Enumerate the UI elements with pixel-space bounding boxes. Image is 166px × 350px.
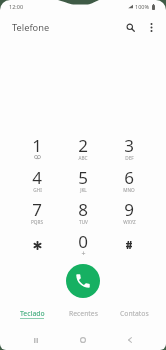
button[interactable] (106, 229, 152, 261)
button[interactable]: Call (66, 264, 100, 298)
staticText: GHI (33, 187, 42, 193)
staticText: Telefone (12, 21, 50, 34)
staticText: 100% (135, 3, 150, 10)
staticText: 6 (124, 166, 134, 189)
staticText: 7 (32, 198, 42, 221)
staticText: Contatos (120, 309, 149, 318)
staticText: Recentes (69, 309, 98, 318)
button[interactable]: 1 (14, 133, 60, 165)
staticText: DEF (125, 155, 134, 161)
button[interactable]: Recentes (58, 306, 109, 328)
button[interactable]: Search (120, 17, 140, 37)
staticText: 8 (78, 198, 88, 221)
button[interactable] (14, 229, 60, 261)
staticText: + (81, 249, 86, 259)
button[interactable]: 6 (106, 165, 152, 197)
button[interactable]: Home (59, 330, 106, 350)
staticText: MNO (123, 187, 135, 193)
button[interactable]: Teclado (6, 306, 58, 328)
button[interactable]: 9 (106, 197, 152, 229)
staticText: 5 (78, 166, 88, 189)
button[interactable]: 2 (60, 133, 106, 165)
staticText: JKL (80, 187, 87, 193)
button[interactable]: Contatos (109, 306, 160, 328)
staticText: WXYZ (123, 219, 136, 225)
staticText: 12:00 (9, 3, 24, 10)
staticText: TUV (79, 219, 88, 225)
staticText: 2 (78, 134, 88, 157)
button[interactable]: 7 (14, 197, 60, 229)
staticText: 9 (124, 198, 134, 221)
button[interactable]: 5 (60, 165, 106, 197)
button[interactable]: 8 (60, 197, 106, 229)
button[interactable]: 4 (14, 165, 60, 197)
staticText: 1 (32, 134, 42, 157)
button[interactable]: Recent apps (13, 330, 59, 350)
staticText: ABC (78, 155, 88, 161)
button[interactable]: 3 (106, 133, 152, 165)
staticText: 0 (78, 230, 88, 253)
button[interactable]: Back (106, 330, 153, 350)
staticText: Teclado (20, 309, 45, 318)
staticText: 3 (124, 134, 134, 157)
button[interactable]: 0 (60, 229, 106, 261)
button[interactable]: More options (140, 16, 162, 38)
staticText: 4 (32, 166, 42, 189)
staticText: PQRS (31, 219, 43, 225)
